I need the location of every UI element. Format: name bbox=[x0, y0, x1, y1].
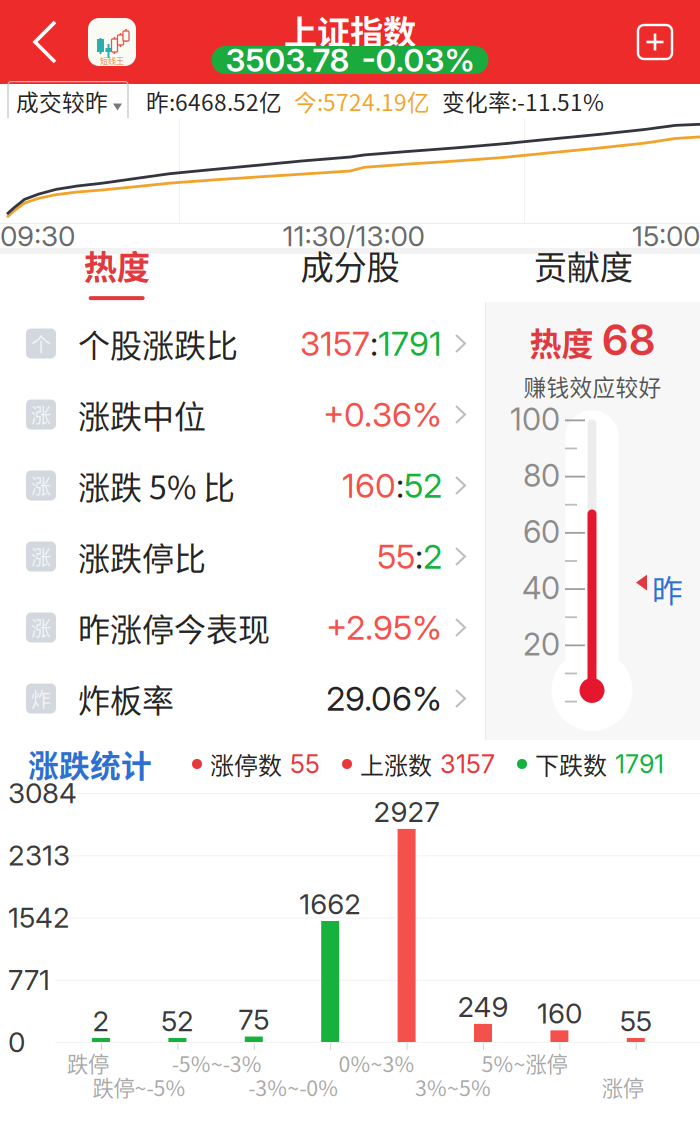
button[interactable]: 涨 bbox=[0, 521, 485, 592]
staticText: 涨跌停比 bbox=[78, 533, 206, 580]
staticText: -0.03% bbox=[361, 41, 474, 79]
staticText: 75 bbox=[238, 1003, 269, 1036]
button[interactable]: 成交较昨 bbox=[8, 82, 128, 120]
staticText: 涨跌统计 bbox=[28, 742, 152, 786]
staticText: 3157 bbox=[300, 323, 370, 364]
staticText: -5%~-3% bbox=[172, 1048, 262, 1078]
button[interactable]: 贡献度 bbox=[467, 254, 700, 302]
staticText: 100 bbox=[510, 401, 560, 438]
staticText: 涨跌中位 bbox=[78, 391, 206, 438]
staticText: 2 bbox=[92, 1004, 109, 1038]
staticText: 昨 bbox=[652, 567, 683, 611]
staticText: 今:5724.19亿 bbox=[294, 85, 430, 117]
button[interactable]: 成分股 bbox=[233, 254, 467, 302]
staticText: 3503.78 bbox=[225, 41, 349, 79]
staticText: 热度 bbox=[529, 319, 593, 365]
staticText: 55 bbox=[290, 749, 320, 779]
staticText: 3084 bbox=[8, 776, 77, 810]
staticText: 涨停 bbox=[602, 1072, 644, 1102]
staticText: 短线王 bbox=[100, 55, 124, 66]
staticText: 炸板率 bbox=[78, 675, 174, 722]
staticText: 上涨数 bbox=[360, 747, 432, 781]
staticText: 68 bbox=[601, 314, 655, 366]
staticText: 3157 bbox=[440, 749, 495, 779]
button[interactable]: Back bbox=[0, 0, 88, 84]
staticText: 160 bbox=[342, 465, 396, 506]
staticText: -3%~-0% bbox=[248, 1072, 338, 1102]
staticText: 80 bbox=[523, 457, 560, 494]
staticText: 1791 bbox=[378, 323, 442, 364]
button[interactable]: 炸 bbox=[0, 663, 485, 734]
staticText: 2313 bbox=[8, 838, 70, 872]
staticText: 0%~3% bbox=[339, 1048, 415, 1078]
staticText: : bbox=[396, 465, 404, 506]
staticText: 20 bbox=[523, 626, 560, 663]
staticText: 跌停 bbox=[67, 1048, 109, 1078]
staticText: 29.06% bbox=[326, 678, 442, 719]
staticText: 涨跌 5% 比 bbox=[78, 462, 235, 509]
staticText: 下跌数 bbox=[535, 747, 607, 781]
staticText: 涨 bbox=[31, 613, 51, 642]
staticText: +2.95% bbox=[326, 607, 442, 648]
staticText: 涨 bbox=[31, 542, 51, 571]
staticText: 40 bbox=[522, 570, 560, 607]
staticText: 52 bbox=[161, 1004, 194, 1038]
staticText: : bbox=[415, 536, 423, 577]
staticText: : bbox=[370, 323, 378, 364]
staticText: 249 bbox=[457, 990, 508, 1024]
staticText: 1662 bbox=[299, 887, 361, 921]
staticText: 个 bbox=[31, 329, 51, 358]
staticText: 2 bbox=[423, 536, 442, 577]
button[interactable]: 涨 bbox=[0, 450, 485, 521]
button[interactable]: 热度 bbox=[0, 254, 233, 302]
staticText: 涨 bbox=[31, 400, 51, 429]
staticText: 0 bbox=[8, 1025, 25, 1059]
staticText: 52 bbox=[404, 465, 442, 506]
staticText: 11:30/13:00 bbox=[282, 219, 424, 253]
staticText: 变化率:-11.51% bbox=[442, 85, 604, 117]
staticText: 成交较昨 bbox=[16, 85, 108, 117]
staticText: +0.36% bbox=[323, 394, 442, 435]
staticText: 炸 bbox=[31, 684, 51, 713]
staticText: 昨:6468.52亿 bbox=[146, 85, 282, 117]
staticText: 1791 bbox=[615, 749, 664, 779]
staticText: 09:30 bbox=[0, 219, 75, 253]
staticText: 55 bbox=[620, 1004, 652, 1038]
staticText: 771 bbox=[8, 963, 50, 997]
staticText: 15:00 bbox=[632, 219, 700, 253]
staticText: 160 bbox=[537, 996, 582, 1030]
staticText: 60 bbox=[523, 513, 560, 550]
button[interactable]: 涨 bbox=[0, 379, 485, 450]
staticText: 5%~涨停 bbox=[481, 1048, 567, 1078]
button[interactable]: Add bbox=[614, 0, 700, 84]
button[interactable]: 涨 bbox=[0, 592, 485, 663]
staticText: 55 bbox=[377, 536, 415, 577]
staticText: 昨涨停今表现 bbox=[78, 604, 270, 651]
button[interactable]: 个 bbox=[0, 308, 485, 379]
staticText: 跌停~-5% bbox=[92, 1072, 185, 1102]
staticText: 涨 bbox=[31, 471, 51, 500]
staticText: 贡献度 bbox=[534, 241, 633, 289]
staticText: 2927 bbox=[374, 795, 440, 829]
staticText: 热度 bbox=[84, 241, 150, 289]
staticText: 涨停数 bbox=[210, 747, 282, 781]
staticText: 1542 bbox=[8, 901, 70, 934]
staticText: 成分股 bbox=[300, 241, 399, 289]
staticText: 上证指数 bbox=[284, 6, 416, 54]
staticText: 3%~5% bbox=[415, 1072, 491, 1102]
staticText: 个股涨跌比 bbox=[78, 320, 238, 367]
staticText: 赚钱效应较好 bbox=[523, 370, 661, 402]
